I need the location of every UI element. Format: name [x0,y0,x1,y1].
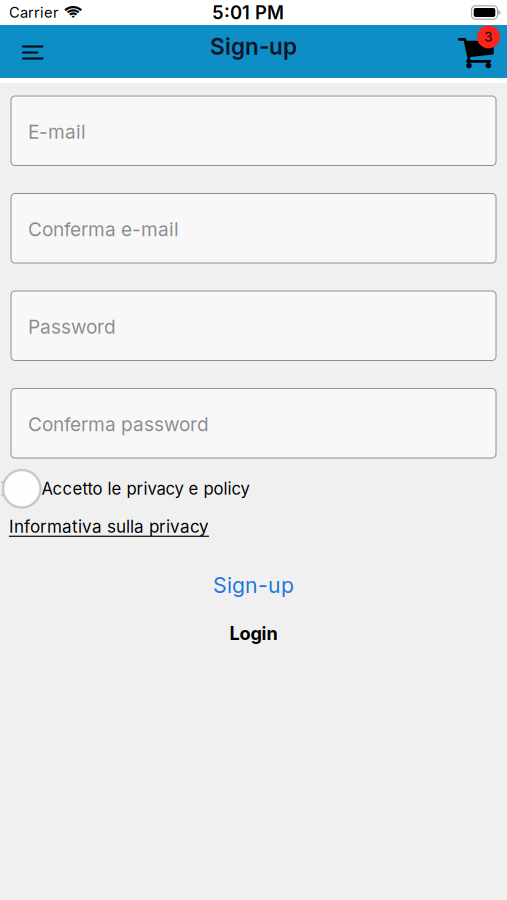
button[interactable]: Sign-up [213,573,294,598]
staticText: Conferma password [28,413,209,435]
button[interactable]: Cart [452,25,507,70]
staticText:  [64,4,82,20]
staticText: Carrier [9,4,59,21]
staticText: E-mail [28,120,86,143]
staticText:  [458,33,494,71]
button[interactable]: Informativa sulla privacy [0,516,209,537]
button[interactable]: Menu [0,25,53,78]
button[interactable]: E-mail [11,96,496,165]
button[interactable]: Conferma password [11,388,496,458]
button[interactable]: Accetto le privacy e policy [3,470,40,507]
staticText: Sign-up [213,573,294,598]
button[interactable]: Login [229,623,277,644]
staticText: 5:01 PM [212,2,284,23]
staticText: Conferma e-mail [28,218,179,240]
staticText: Informativa sulla privacy [9,516,209,537]
staticText: Password [28,315,116,338]
staticText: Login [229,623,277,644]
staticText: Sign-up [210,33,297,60]
staticText: 3 [484,29,493,45]
button[interactable]: Conferma e-mail [11,193,496,263]
staticText: Accetto le privacy e policy [41,479,249,499]
button[interactable]: Password [11,291,496,360]
